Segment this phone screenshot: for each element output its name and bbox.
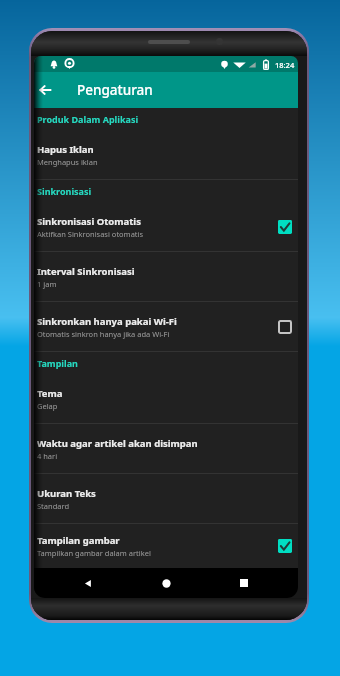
staticText: 1 jam (37, 279, 57, 289)
button[interactable]: Sinkronisasi Otomatis (34, 202, 298, 251)
staticText: Sinkronisasi (37, 185, 92, 197)
staticText: Ukuran Teks (37, 487, 96, 500)
staticText: Tampilan gambar (37, 534, 120, 547)
staticText: Hapus Iklan (37, 143, 94, 156)
staticText: Pengaturan (77, 81, 153, 99)
staticText: Sinkronisasi Otomatis (37, 215, 141, 228)
staticText: Aktifkan Sinkronisasi otomatis (37, 229, 144, 239)
button[interactable]: Tema (34, 374, 298, 423)
staticText: 18:24 (275, 60, 295, 70)
staticText: Tampilan (37, 357, 78, 369)
button[interactable]: Waktu agar artikel akan disimpan (34, 424, 298, 473)
staticText: Menghapus iklan (37, 157, 98, 167)
button[interactable]: Home (146, 568, 186, 598)
staticText: Tampilkan gambar dalam artikel (37, 548, 151, 558)
button[interactable]: Back (68, 568, 108, 598)
button[interactable]: Back (34, 72, 55, 108)
button[interactable]: Interval Sinkronisasi (34, 252, 298, 301)
staticText: Gelap (37, 401, 58, 411)
staticText: Waktu agar artikel akan disimpan (37, 437, 198, 450)
button[interactable]: Ukuran Teks (34, 474, 298, 523)
staticText: 4 hari (37, 451, 58, 461)
button[interactable]: Tampilan gambar (34, 524, 298, 568)
staticText: Otomatis sinkron hanya jika ada Wi-Fi (37, 329, 170, 339)
staticText: Interval Sinkronisasi (37, 265, 135, 278)
button[interactable]: Hapus Iklan (34, 130, 298, 179)
staticText: Standard (37, 501, 70, 511)
staticText: Sinkronkan hanya pakai Wi-Fi (37, 315, 177, 328)
button[interactable]: Recent apps (224, 568, 264, 598)
button[interactable]: Sinkronkan hanya pakai Wi-Fi (34, 302, 298, 351)
staticText: Tema (37, 387, 63, 400)
staticText: Produk Dalam Aplikasi (37, 113, 139, 125)
